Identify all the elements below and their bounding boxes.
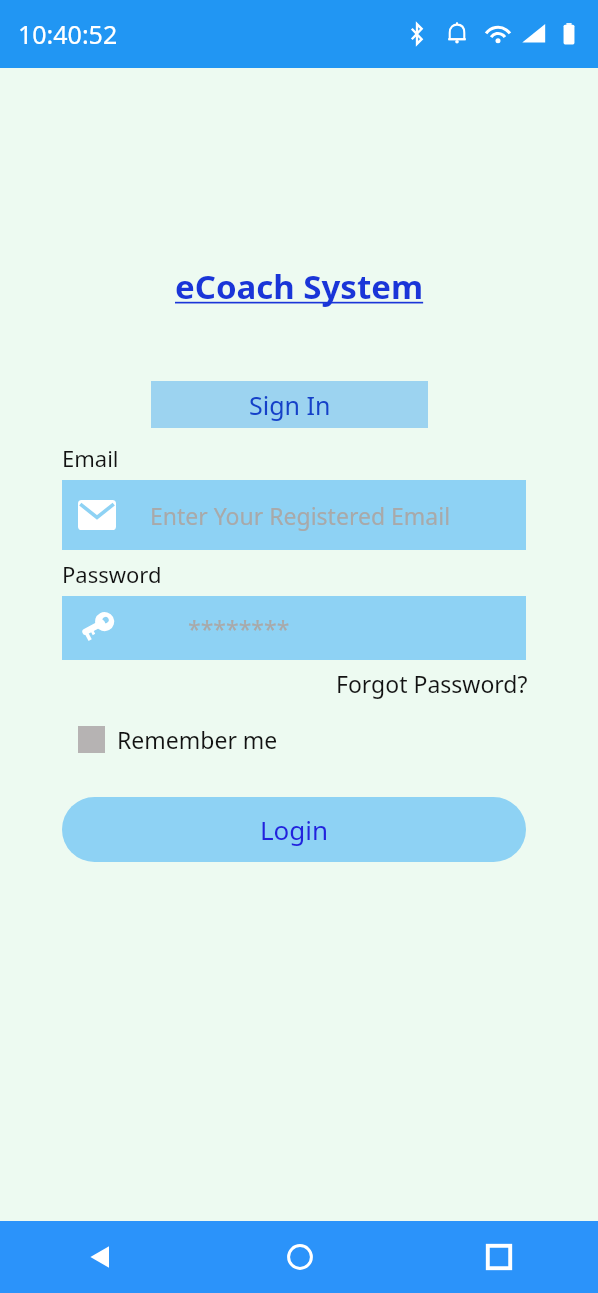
staticText: Email [62, 443, 119, 473]
staticText: Forgot Password? [336, 668, 528, 699]
button[interactable]: Home [200, 1221, 399, 1293]
staticText: Password [62, 559, 162, 589]
button[interactable]: Email [62, 480, 526, 550]
button[interactable]: Login [62, 797, 526, 862]
button[interactable]: Sign In [151, 381, 428, 428]
button[interactable]: Forgot Password? [336, 668, 528, 699]
other: Email [78, 500, 116, 530]
button[interactable]: Password [62, 596, 526, 660]
button[interactable]: Remember me [78, 724, 278, 755]
button[interactable]: Back [0, 1221, 200, 1293]
staticText: eCoach System [175, 264, 424, 309]
staticText: Remember me [117, 724, 278, 755]
staticText: 10:40:52 [18, 17, 118, 51]
staticText: Login [260, 812, 329, 847]
button[interactable]: Recents [399, 1221, 598, 1293]
other: Password [78, 612, 118, 644]
staticText: Enter Your Registered Email [150, 500, 451, 531]
staticText: ******** [188, 613, 290, 644]
staticText: Sign In [249, 388, 331, 422]
